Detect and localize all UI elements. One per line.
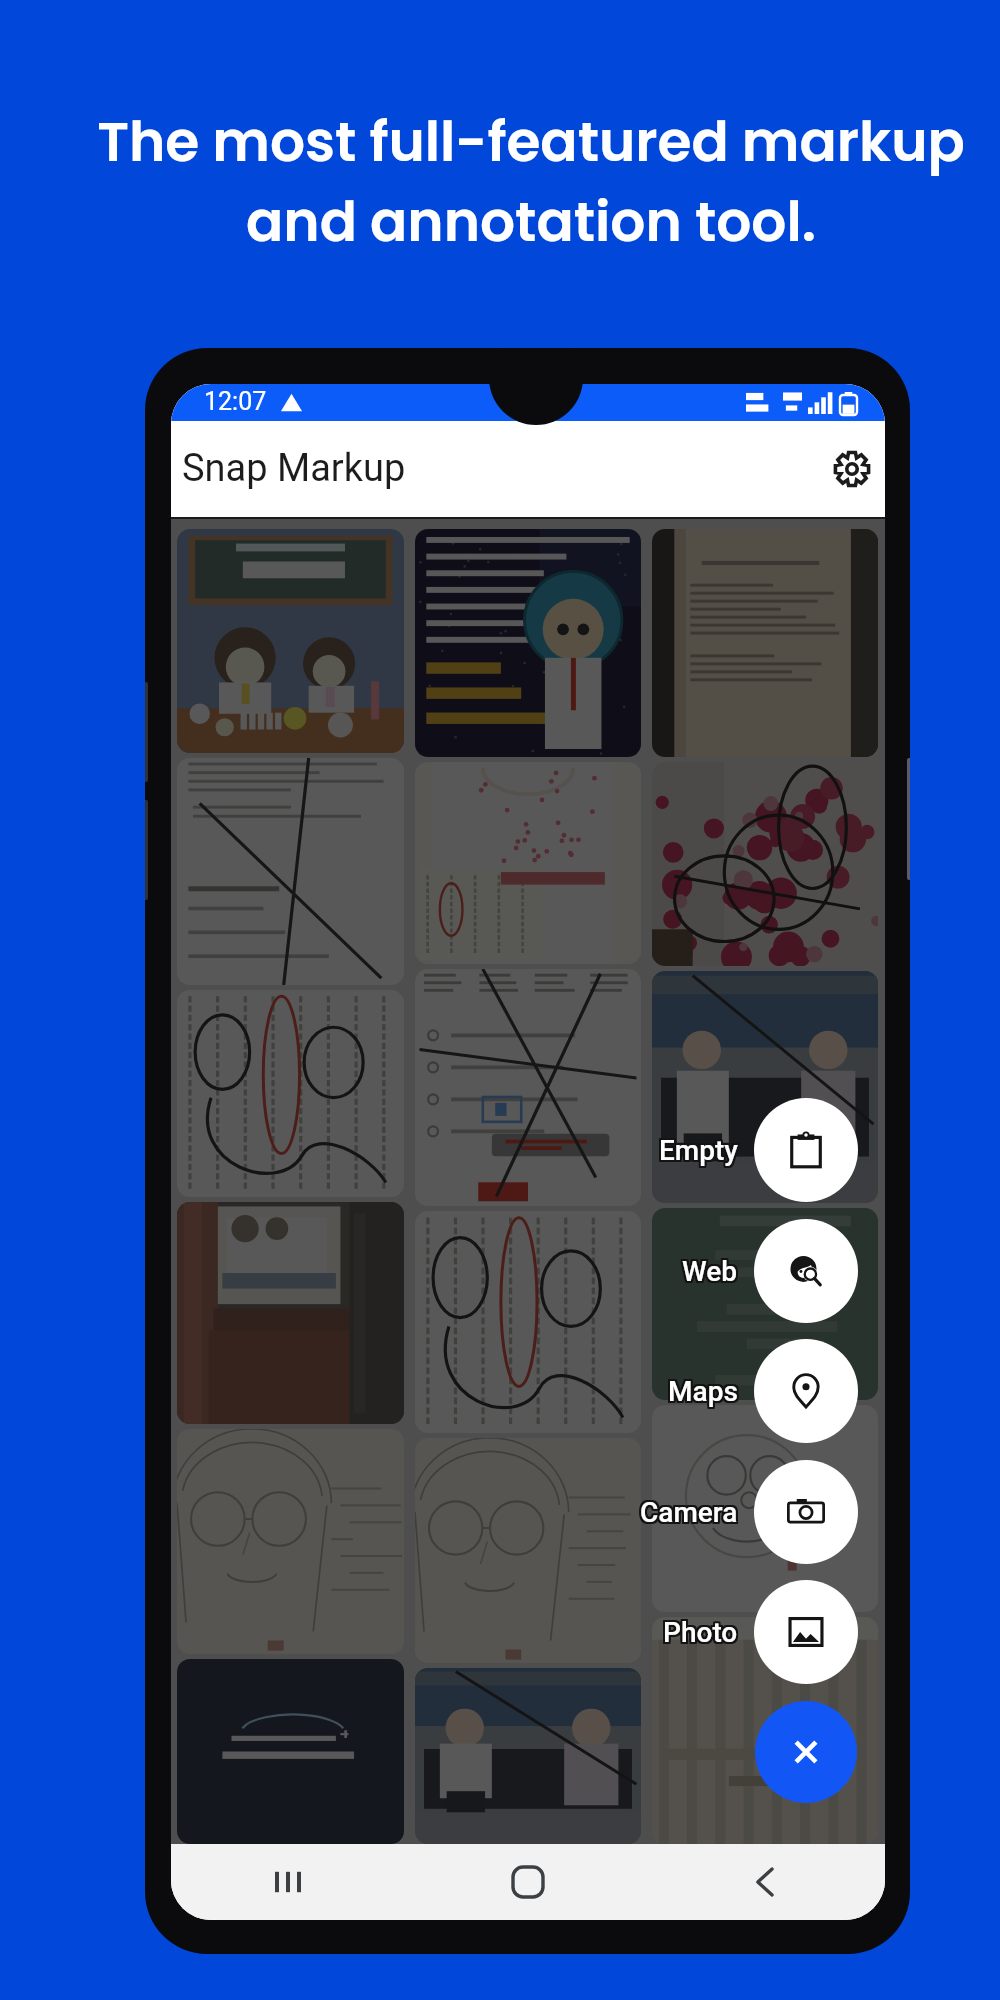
staticText: Photo	[663, 1617, 738, 1650]
staticText: Empty	[660, 1135, 739, 1168]
button[interactable]: Web	[528, 1243, 738, 1299]
staticText: Web	[683, 1254, 739, 1287]
button[interactable]	[415, 1211, 641, 1433]
staticText: Empty	[658, 1135, 737, 1168]
staticText: Maps	[666, 1374, 736, 1407]
staticText: Web	[683, 1257, 739, 1290]
staticText: Camera	[638, 1498, 736, 1531]
staticText: Camera	[642, 1497, 740, 1530]
staticText: Photo	[661, 1615, 736, 1648]
staticText: Web	[682, 1255, 738, 1288]
staticText: Camera	[641, 1498, 739, 1531]
button[interactable]: Maps	[528, 1363, 738, 1419]
staticText: Photo	[665, 1616, 740, 1649]
staticText: Maps	[667, 1374, 737, 1407]
button[interactable]	[177, 1202, 404, 1424]
staticText: Maps	[669, 1374, 739, 1407]
staticText: Empty	[659, 1133, 738, 1166]
staticText: Maps	[667, 1377, 737, 1410]
staticText: Camera	[638, 1494, 736, 1527]
button[interactable]	[415, 762, 641, 964]
staticText: Camera	[639, 1497, 737, 1530]
button[interactable]	[652, 1405, 878, 1612]
staticText: Web	[681, 1256, 737, 1289]
staticText: Maps	[668, 1376, 738, 1409]
button[interactable]	[652, 529, 878, 757]
staticText: Empty	[657, 1132, 736, 1165]
button[interactable]	[177, 990, 404, 1197]
button[interactable]: Home	[488, 1844, 568, 1920]
button[interactable]: Web	[754, 1219, 858, 1323]
staticText: Empty	[658, 1132, 737, 1165]
staticText: Empty	[660, 1133, 739, 1166]
button[interactable]: Close menu	[755, 1701, 857, 1803]
staticText: Empty	[661, 1134, 740, 1167]
staticText: Camera	[640, 1496, 738, 1529]
staticText: Empty	[657, 1135, 736, 1168]
button[interactable]	[177, 1429, 404, 1654]
button[interactable]	[652, 762, 878, 966]
button[interactable]: Maps	[754, 1339, 858, 1443]
button[interactable]	[652, 1617, 878, 1844]
button[interactable]: Camera	[528, 1484, 738, 1540]
staticText: Camera	[640, 1497, 738, 1530]
button[interactable]: Empty	[754, 1098, 858, 1202]
button[interactable]: Recents	[250, 1844, 330, 1920]
staticText: Web	[680, 1256, 736, 1289]
button[interactable]	[415, 529, 641, 757]
button[interactable]	[415, 969, 641, 1206]
staticText: Empty	[660, 1134, 739, 1167]
staticText: Photo	[662, 1618, 737, 1651]
staticText: Empty	[659, 1132, 738, 1165]
staticText: Empty	[658, 1133, 737, 1166]
button[interactable]	[415, 1668, 641, 1844]
staticText: Empty	[657, 1134, 736, 1167]
staticText: Photo	[665, 1618, 740, 1651]
staticText: Web	[683, 1253, 739, 1286]
button[interactable]: Camera	[754, 1460, 858, 1564]
button[interactable]	[415, 1438, 641, 1663]
staticText: Photo	[663, 1616, 738, 1649]
staticText: Maps	[670, 1373, 740, 1406]
staticText: Web	[684, 1257, 740, 1290]
staticText: Maps	[669, 1375, 739, 1408]
button[interactable]	[177, 1659, 404, 1844]
staticText: Camera	[642, 1496, 740, 1529]
staticText: Web	[684, 1253, 740, 1286]
staticText: Photo	[661, 1618, 736, 1651]
staticText: Web	[680, 1257, 736, 1290]
staticText: Maps	[670, 1376, 740, 1409]
staticText: Photo	[665, 1614, 740, 1647]
staticText: Camera	[638, 1496, 736, 1529]
staticText: 12:07	[204, 387, 267, 416]
staticText: Web	[684, 1254, 740, 1287]
staticText: Web	[681, 1253, 737, 1286]
staticText: Maps	[669, 1376, 739, 1409]
button[interactable]: Back	[726, 1844, 806, 1920]
button[interactable]: Photo	[528, 1604, 738, 1660]
button[interactable]	[177, 758, 404, 985]
staticText: Maps	[668, 1377, 738, 1410]
staticText: Empty	[657, 1133, 736, 1166]
staticText: Web	[682, 1254, 738, 1287]
staticText: Web	[684, 1255, 740, 1288]
button[interactable]	[177, 529, 404, 753]
staticText: Camera	[639, 1494, 737, 1527]
staticText: Empty	[660, 1136, 739, 1169]
staticText: Web	[681, 1254, 737, 1287]
staticText: Photo	[664, 1614, 739, 1647]
staticText: Camera	[642, 1494, 740, 1527]
staticText: Maps	[670, 1375, 740, 1408]
staticText: Maps	[670, 1374, 740, 1407]
button[interactable]: Photo	[754, 1580, 858, 1684]
staticText: Photo	[664, 1615, 739, 1648]
staticText: Web	[683, 1256, 739, 1289]
button[interactable]	[652, 1208, 878, 1400]
staticText: Camera	[642, 1495, 740, 1528]
staticText: Photo	[663, 1615, 738, 1648]
button[interactable]: Settings	[827, 444, 877, 494]
button[interactable]: Empty	[528, 1122, 738, 1178]
button[interactable]	[652, 971, 878, 1203]
staticText: Web	[681, 1257, 737, 1290]
staticText: Maps	[666, 1375, 736, 1408]
